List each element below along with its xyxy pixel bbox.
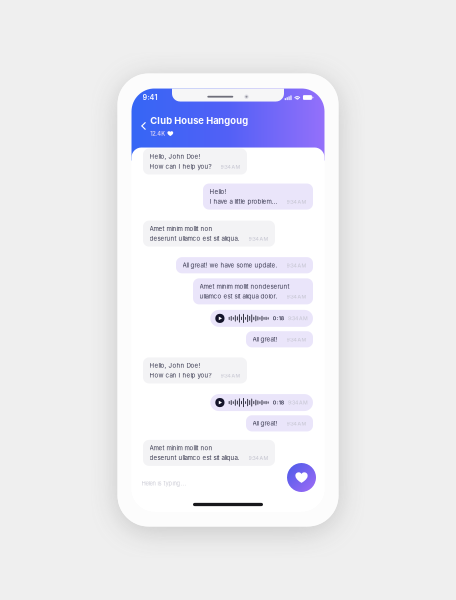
staticText: I have a little problem... — [209, 198, 277, 205]
staticText: Amet minim mollit non — [149, 444, 212, 452]
staticText: Club House Hangoug — [150, 115, 248, 126]
staticText: 9:34 AM — [286, 421, 306, 427]
staticText: All great! — [252, 420, 277, 427]
staticText: 0:18 — [273, 315, 284, 322]
staticText: 9:34 AM — [286, 293, 306, 300]
staticText: deserunt ullamco est sit aliqua. — [149, 454, 239, 461]
staticText: 9:34 AM — [248, 236, 268, 242]
staticText: 9:34 AM — [286, 336, 306, 343]
staticText: Hello! — [209, 188, 226, 195]
staticText: Hello, John Doe! — [149, 153, 200, 160]
staticText: 9:34 AM — [286, 199, 306, 205]
staticText: Amet minim mollit non — [149, 225, 212, 232]
staticText: All great! — [252, 336, 277, 343]
staticText: 9:34 AM — [286, 262, 306, 269]
staticText: 9:34 AM — [288, 315, 308, 321]
staticText: 9:34 AM — [248, 455, 268, 461]
staticText: All great! we have some update. — [182, 261, 277, 269]
staticText: 9:34 AM — [288, 399, 308, 406]
staticText: 0:18 — [273, 399, 284, 406]
staticText: 9:34 AM — [220, 372, 240, 379]
staticText: Hello, John Doe! — [149, 362, 200, 369]
staticText: Amet minim mollit nondeserunt — [199, 283, 289, 290]
button[interactable]: Like — [287, 463, 316, 492]
staticText: 12.4K — [150, 130, 165, 137]
staticText: 9:41 — [142, 93, 157, 102]
staticText: deserunt ullamco est sit aliqua. — [149, 235, 239, 242]
staticText: Helen is typing... — [141, 480, 186, 487]
staticText: How can I help you? — [149, 372, 211, 379]
staticText: How can I help you? — [149, 163, 211, 170]
staticText: 9:34 AM — [220, 164, 240, 170]
button[interactable]: Back — [137, 118, 150, 134]
staticText: ullamco est sit aliqua dolor. — [199, 293, 277, 300]
